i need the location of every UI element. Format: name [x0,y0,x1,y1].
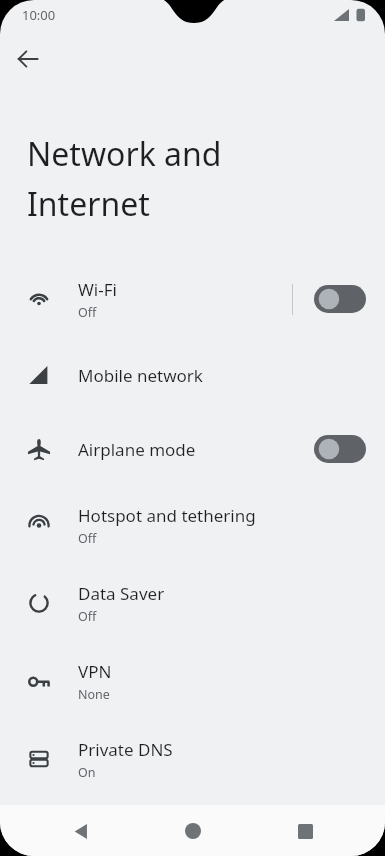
staticText: Hotspot and tethering [78,504,256,527]
button[interactable]: Private DNS [0,720,385,798]
staticText: Off [78,530,97,547]
staticText: 10:00 [22,6,56,24]
staticText: On [78,764,96,781]
button[interactable]: Mobile network [0,338,385,412]
staticText: Private DNS [78,738,173,761]
button[interactable]: Recent apps [281,807,329,855]
staticText: Internet [27,182,150,226]
button[interactable]: Data Saver [0,564,385,642]
staticText: None [78,686,110,703]
button[interactable]: Home [169,807,217,855]
staticText: Airplane mode [78,438,196,461]
button[interactable]: Back [57,807,105,855]
button[interactable]: Hotspot and tethering [0,486,385,564]
button[interactable]: Back [8,39,48,79]
staticText: Off [78,608,97,625]
staticText: VPN [78,660,112,683]
staticText: Wi-Fi [78,278,117,301]
button[interactable]: Wi-Fi [0,260,385,338]
staticText: Mobile network [78,364,203,387]
button[interactable]: Toggle Airplane mode [314,429,366,469]
staticText: Data Saver [78,582,165,605]
button[interactable]: VPN [0,642,385,720]
staticText: Network and [27,132,222,176]
staticText: Off [78,304,97,321]
button[interactable]: Toggle Wi-Fi [314,279,366,319]
button[interactable]: Airplane mode [0,412,385,486]
